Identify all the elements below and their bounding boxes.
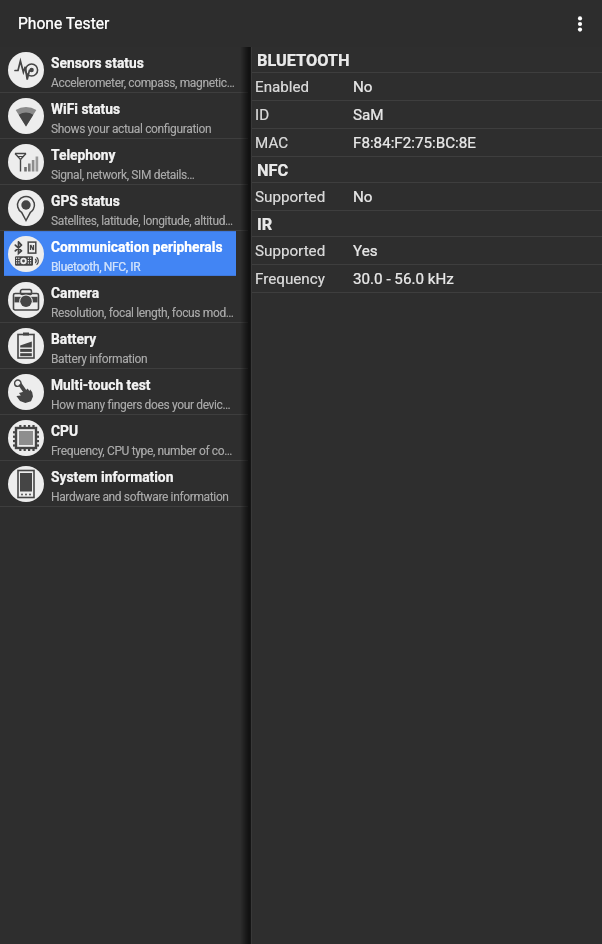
staticText: NFC — [257, 161, 289, 180]
staticText: No — [353, 78, 373, 96]
button[interactable]: Battery — [0, 323, 248, 369]
staticText: Accelerometer, compass, magnetic fi… — [51, 76, 235, 90]
staticText: System information — [51, 469, 174, 485]
button[interactable]: WiFi status — [0, 93, 248, 139]
staticText: 30.0 - 56.0 kHz — [353, 270, 454, 288]
staticText: Frequency, CPU type, number of core… — [51, 444, 235, 458]
staticText: Enabled — [255, 78, 353, 96]
staticText: Phone Tester — [18, 15, 110, 33]
staticText: No — [353, 188, 373, 206]
button[interactable]: Camera — [0, 277, 248, 323]
staticText: Hardware and software information — [51, 490, 229, 504]
staticText: Battery — [51, 331, 97, 347]
staticText: F8:84:F2:75:BC:8E — [353, 134, 476, 152]
staticText: Satellites, latitude, longitude, altitud… — [51, 214, 235, 228]
button[interactable]: Telephony — [0, 139, 248, 185]
staticText: MAC — [255, 134, 353, 152]
staticText: Bluetooth, NFC, IR — [51, 260, 141, 274]
button[interactable]: Multi-touch test — [0, 369, 248, 415]
staticText: Shows your actual configuration — [51, 122, 212, 136]
button[interactable]: Sensors status — [0, 47, 248, 93]
staticText: Camera — [51, 285, 100, 301]
staticText: Resolution, focal length, focus mode… — [51, 306, 235, 320]
staticText: ID — [255, 106, 353, 124]
staticText: BLUETOOTH — [257, 51, 350, 70]
staticText: WiFi status — [51, 101, 120, 117]
staticText: Signal, network, SIM details… — [51, 168, 195, 182]
button[interactable]: More options — [558, 0, 602, 47]
button[interactable]: Communication peripherals — [0, 231, 248, 277]
staticText: Multi-touch test — [51, 377, 151, 393]
staticText: Supported — [255, 242, 353, 260]
staticText: Telephony — [51, 147, 116, 163]
button[interactable]: System information — [0, 461, 248, 507]
staticText: SaM — [353, 106, 384, 124]
button[interactable]: GPS status — [0, 185, 248, 231]
staticText: How many fingers does your device r… — [51, 398, 235, 412]
staticText: GPS status — [51, 193, 120, 209]
staticText: IR — [257, 215, 273, 234]
staticText: Yes — [353, 242, 378, 260]
staticText: Supported — [255, 188, 353, 206]
staticText: CPU — [51, 423, 79, 439]
staticText: Communication peripherals — [51, 239, 223, 255]
staticText: Frequency — [255, 270, 353, 288]
staticText: Battery information — [51, 352, 148, 366]
staticText: Sensors status — [51, 55, 144, 71]
button[interactable]: CPU — [0, 415, 248, 461]
